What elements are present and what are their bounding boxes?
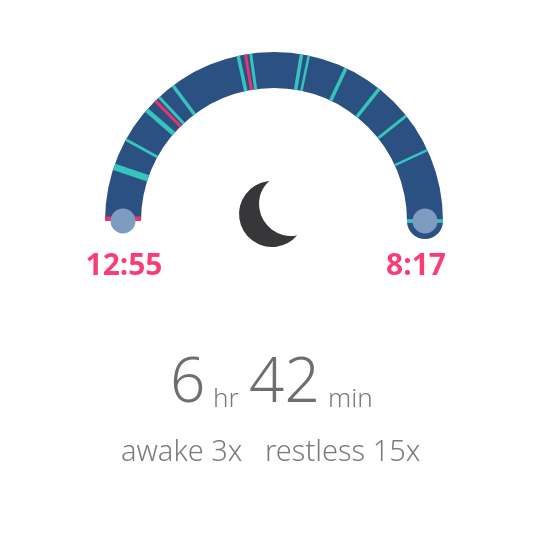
- staticText: awake 3x: [121, 430, 243, 469]
- staticText: hr: [213, 379, 239, 414]
- staticText: min: [328, 379, 373, 414]
- staticText: 6: [170, 336, 206, 420]
- button[interactable]: 6: [121, 336, 421, 469]
- staticText: 12:55: [74, 243, 174, 284]
- button[interactable]: Sleep graph 12:55 to 8:17: [0, 0, 542, 542]
- staticText: restless 15x: [265, 430, 421, 469]
- staticText: 8:17: [366, 243, 466, 284]
- staticText: 42: [249, 336, 320, 420]
